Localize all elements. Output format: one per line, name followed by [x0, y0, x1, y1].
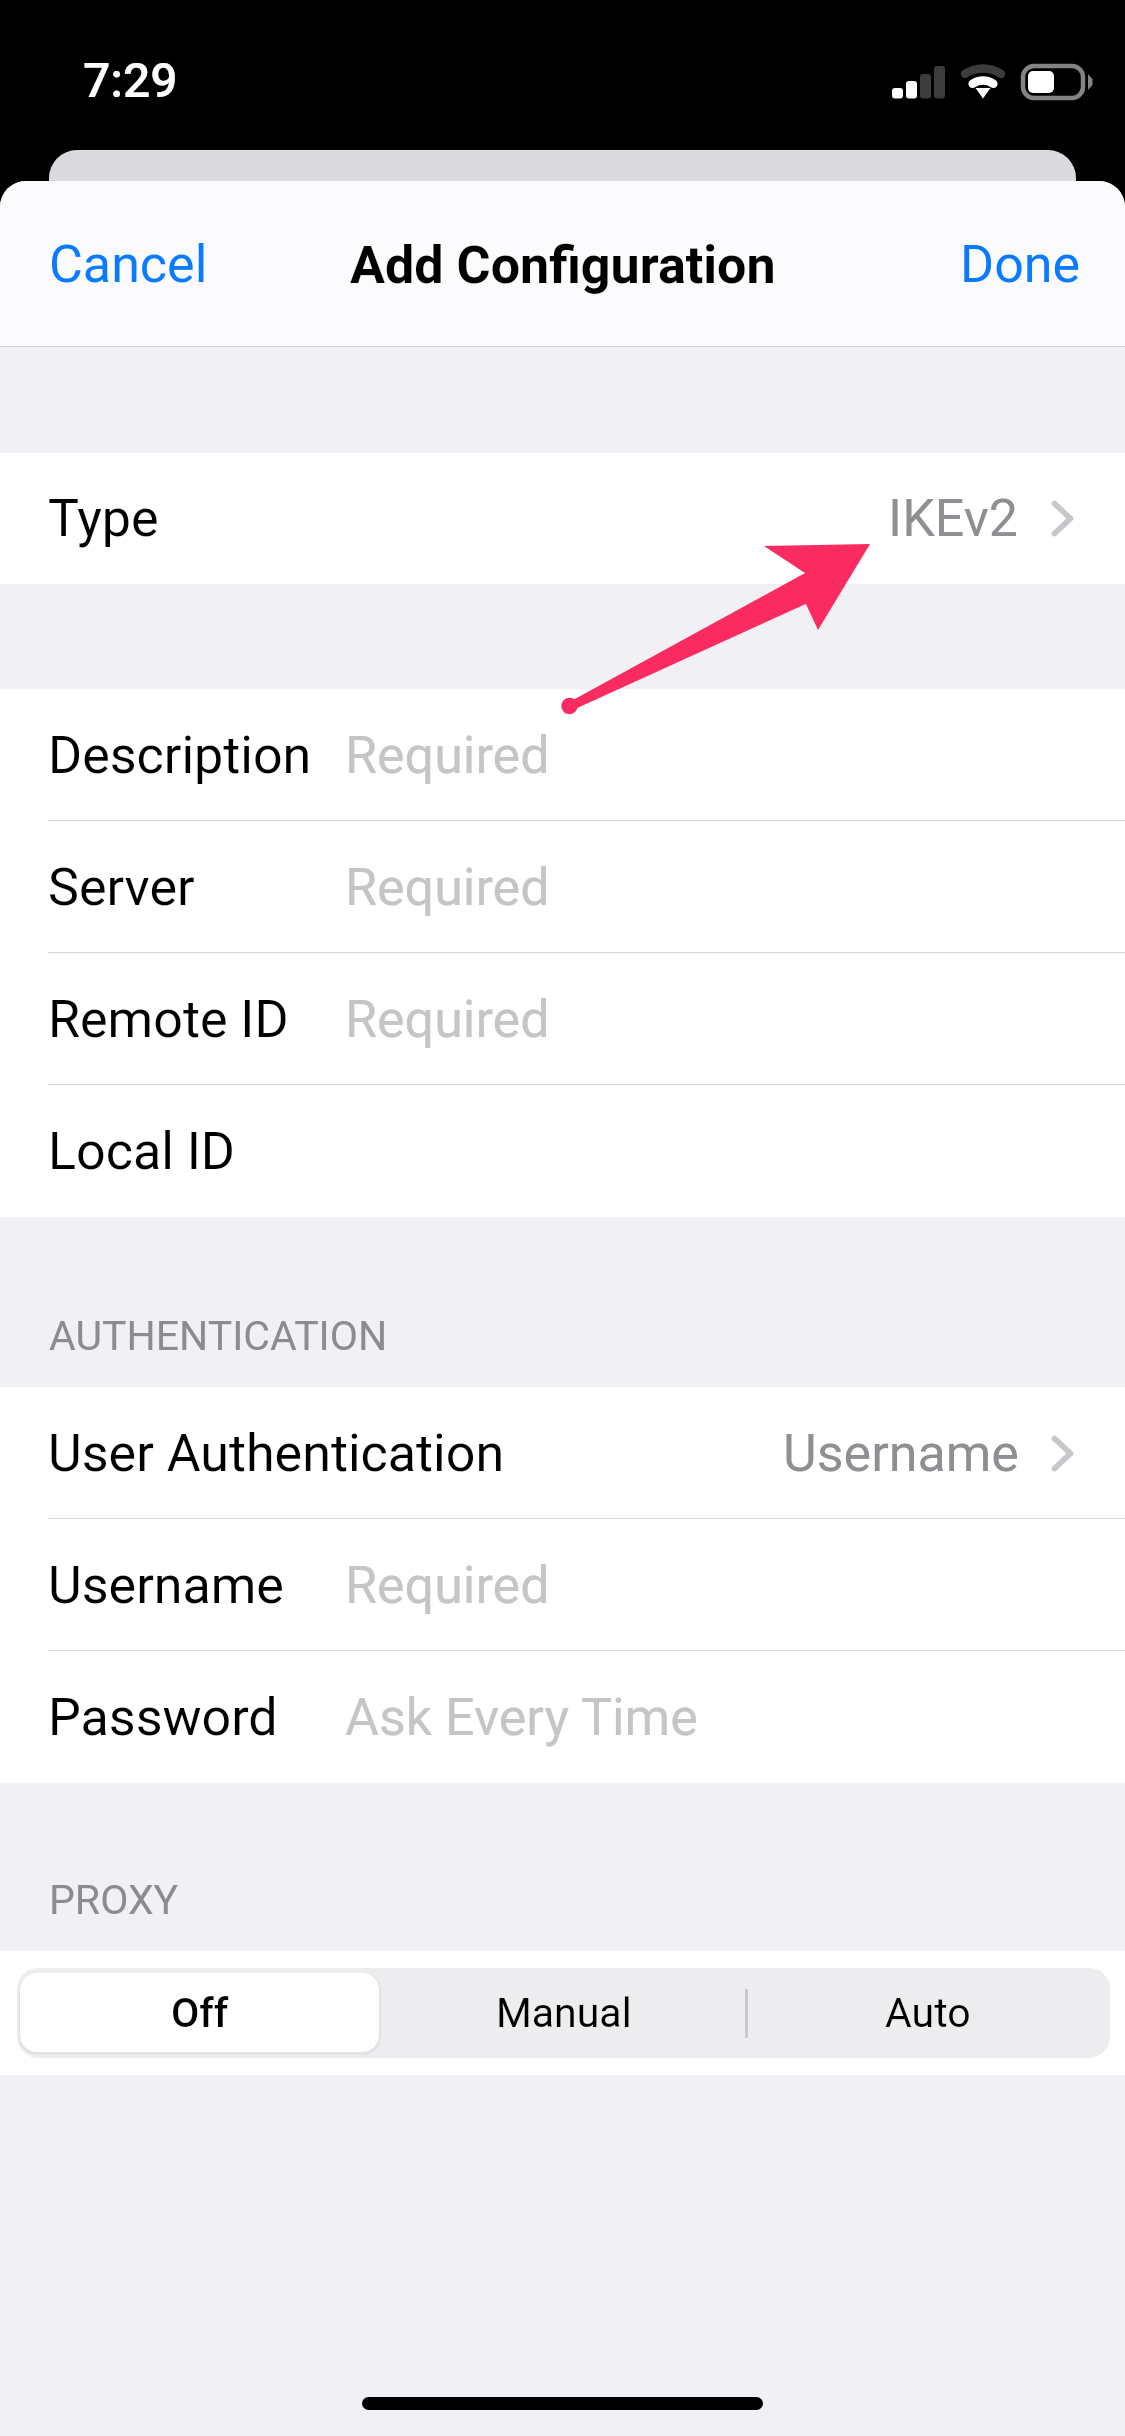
- staticText: Local ID: [48, 1121, 235, 1182]
- staticText: Off: [171, 1989, 229, 2037]
- staticText: Ask Every Time: [345, 1687, 698, 1748]
- other: Annotation arrow: [0, 0, 1125, 2436]
- button[interactable]: Password: [0, 1651, 1125, 1783]
- staticText: Done: [960, 234, 1081, 295]
- button[interactable]: Local ID: [0, 1085, 1125, 1217]
- staticText: Auto: [885, 1989, 971, 2037]
- staticText: Type: [48, 488, 159, 549]
- staticText: Required: [345, 725, 550, 786]
- staticText: Cancel: [49, 234, 208, 295]
- staticText: Manual: [496, 1989, 632, 2037]
- staticText: Server: [48, 857, 195, 918]
- button[interactable]: Remote ID: [0, 953, 1125, 1085]
- staticText: Add Configuration: [350, 235, 776, 296]
- button[interactable]: Type: [0, 453, 1125, 584]
- button[interactable]: Username: [0, 1519, 1125, 1651]
- button[interactable]: Done: [914, 204, 1125, 325]
- staticText: User Authentication: [48, 1423, 505, 1484]
- staticText: AUTHENTICATION: [49, 1312, 388, 1360]
- staticText: Password: [48, 1687, 278, 1748]
- staticText: PROXY: [49, 1876, 179, 1924]
- staticText: Required: [345, 989, 550, 1050]
- staticText: Username: [48, 1555, 284, 1616]
- staticText: Required: [345, 857, 550, 918]
- staticText: Description: [48, 725, 312, 786]
- button[interactable]: Cancel: [0, 204, 254, 325]
- staticText: Remote ID: [48, 989, 289, 1050]
- staticText: Required: [345, 1555, 550, 1616]
- button[interactable]: User Authentication: [0, 1387, 1125, 1519]
- button[interactable]: Off: [17, 1968, 382, 2058]
- button[interactable]: Server: [0, 821, 1125, 953]
- staticText: Username: [783, 1423, 1019, 1484]
- button[interactable]: Auto: [746, 1968, 1110, 2058]
- staticText: 7:29: [83, 52, 178, 108]
- button[interactable]: Manual: [382, 1968, 746, 2058]
- button[interactable]: Description: [0, 689, 1125, 821]
- staticText: IKEv2: [888, 488, 1019, 549]
